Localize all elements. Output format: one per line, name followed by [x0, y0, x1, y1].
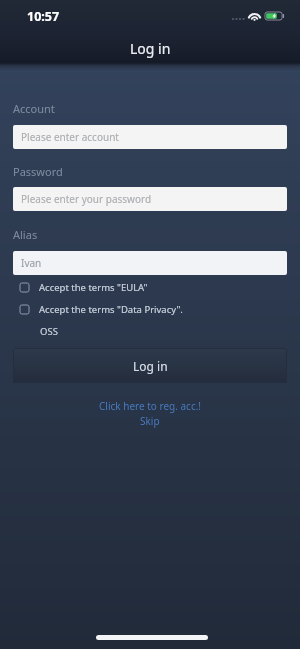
button[interactable]: Accept the terms "Data Privacy".: [13, 299, 263, 317]
button[interactable]: Click here to reg. acc.!: [95, 398, 206, 414]
staticText: OSS: [40, 325, 58, 338]
button[interactable]: Please enter your password: [13, 187, 287, 211]
staticText: Log in: [133, 358, 168, 374]
staticText: Accept the terms "Data Privacy".: [39, 303, 183, 316]
staticText: Account: [13, 101, 55, 116]
button[interactable]: Please enter account: [13, 125, 287, 149]
staticText: Please enter your password: [21, 192, 152, 206]
staticText: Please enter account: [21, 130, 119, 144]
staticText: 10:57: [27, 8, 60, 25]
button[interactable]: Accept the terms "EULA": [13, 277, 263, 295]
button[interactable]: Skip: [136, 413, 164, 429]
staticText: Log in: [130, 39, 171, 58]
staticText: Password: [13, 164, 63, 179]
staticText: Ivan: [21, 256, 42, 270]
button[interactable]: OSS: [40, 325, 58, 338]
button[interactable]: Log in: [13, 348, 287, 383]
button[interactable]: Ivan: [13, 251, 287, 275]
staticText: Accept the terms "EULA": [39, 281, 148, 294]
staticText: Alias: [13, 227, 38, 242]
